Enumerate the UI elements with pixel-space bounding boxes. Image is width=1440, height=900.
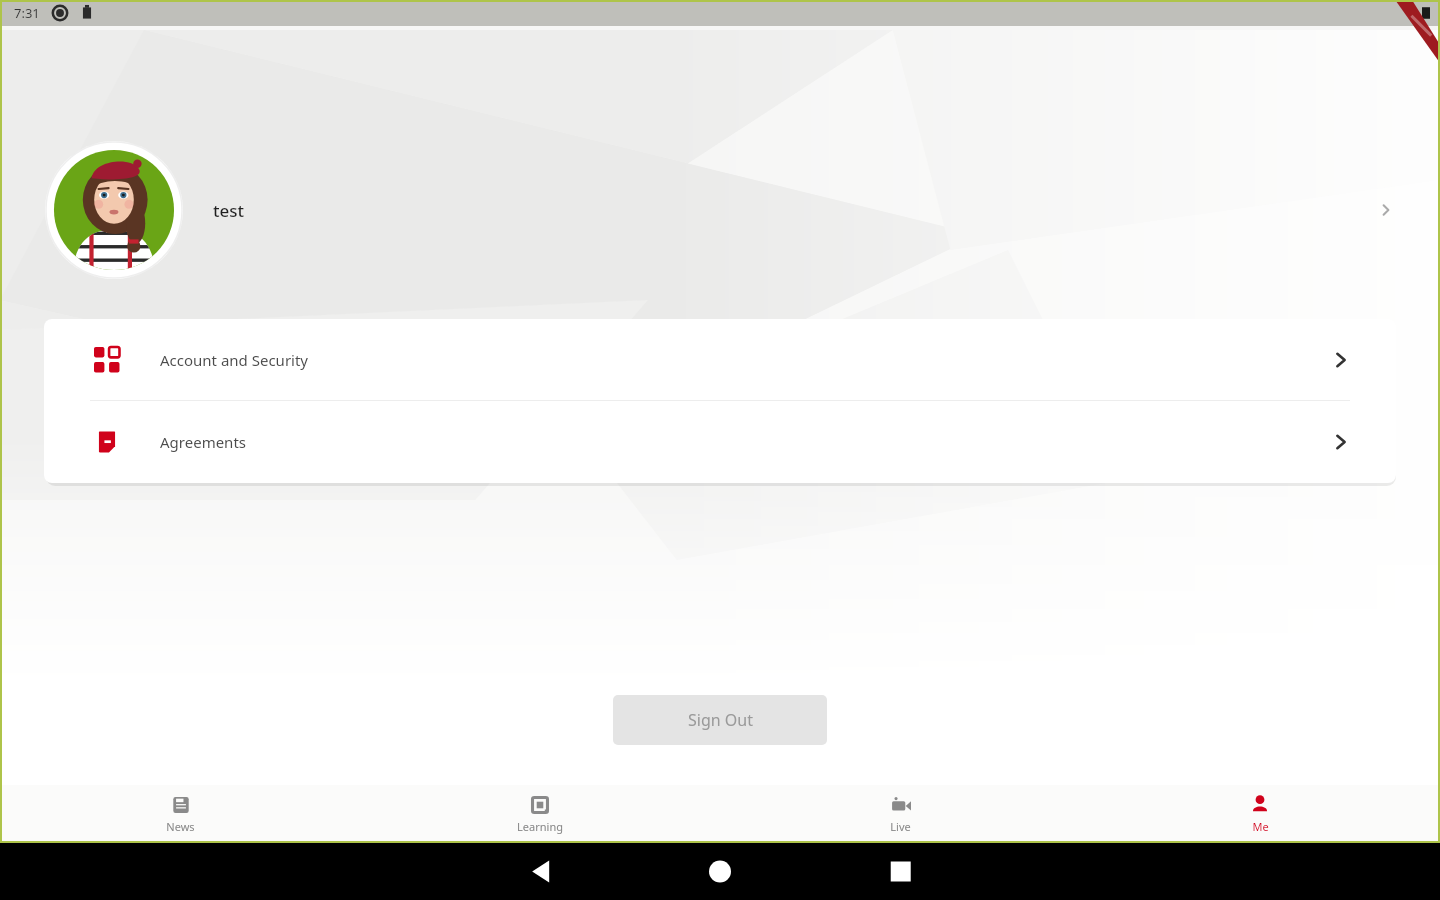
button[interactable]: Sign Out: [613, 695, 827, 745]
button[interactable]: Account and Security: [44, 319, 1396, 400]
button[interactable]: Me: [1080, 785, 1440, 843]
staticText: Account and Security: [160, 350, 309, 370]
button[interactable]: Live: [720, 785, 1080, 843]
button[interactable]: test: [0, 135, 1440, 285]
staticText: Learning: [517, 819, 563, 834]
other: Beta ribbon: [1370, 0, 1440, 70]
button[interactable]: Learning: [360, 785, 720, 843]
staticText: News: [166, 819, 195, 834]
button[interactable]: News: [0, 785, 360, 843]
staticText: Sign Out: [688, 709, 753, 731]
button[interactable]: Agreements: [44, 401, 1396, 482]
other: Profile details: [1374, 198, 1398, 222]
staticText: Agreements: [160, 432, 246, 452]
staticText: Me: [1252, 819, 1269, 834]
staticText: Live: [890, 819, 911, 834]
staticText: test: [213, 199, 245, 222]
staticText: 7:31: [14, 4, 40, 22]
